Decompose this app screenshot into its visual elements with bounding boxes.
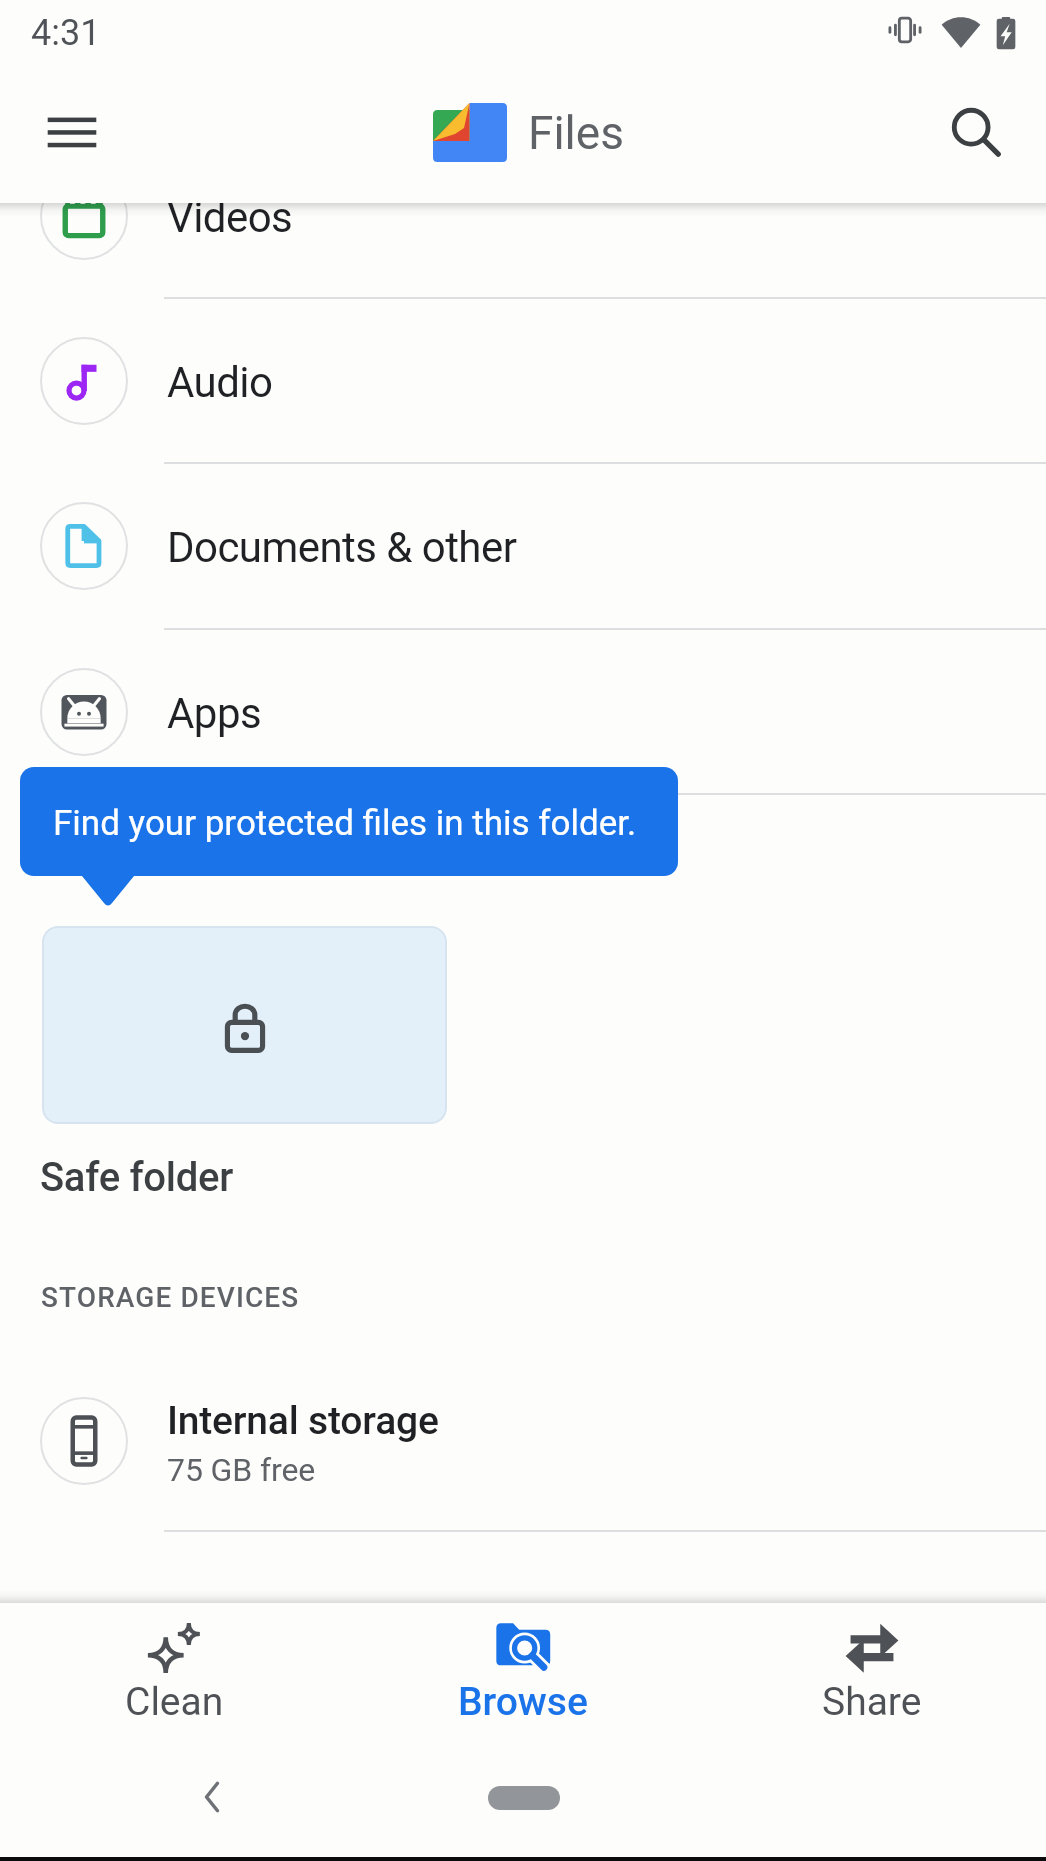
- staticText: Audio: [167, 358, 273, 407]
- staticText: Safe folder: [40, 1154, 233, 1201]
- staticText: Find your protected files in this folder…: [53, 803, 637, 844]
- staticText: Files: [528, 106, 624, 160]
- staticText: 4:31: [31, 12, 101, 54]
- button[interactable]: Clean: [0, 1603, 348, 1743]
- staticText: Clean: [125, 1679, 224, 1725]
- staticText: Share: [822, 1679, 922, 1725]
- staticText: Browse: [458, 1679, 588, 1725]
- button[interactable]: Share: [697, 1603, 1046, 1743]
- button[interactable]: Open navigation drawer: [24, 84, 120, 180]
- button[interactable]: Search: [928, 84, 1024, 180]
- button[interactable]: Documents & other: [0, 464, 1046, 629]
- staticText: Internal storage: [167, 1398, 439, 1444]
- button[interactable]: Audio: [0, 299, 1046, 464]
- staticText: Videos: [167, 193, 293, 242]
- other: Back: [190, 1775, 234, 1819]
- staticText: Apps: [167, 689, 262, 738]
- button[interactable]: Safe folder: [42, 926, 447, 1124]
- button[interactable]: Videos: [0, 134, 1046, 299]
- button[interactable]: Apps: [0, 630, 1046, 795]
- button[interactable]: Browse: [348, 1603, 697, 1743]
- button[interactable]: Internal storage: [0, 1360, 1046, 1532]
- staticText: STORAGE DEVICES: [41, 1281, 300, 1314]
- staticText: 75 GB free: [167, 1451, 316, 1489]
- staticText: Documents & other: [167, 523, 517, 572]
